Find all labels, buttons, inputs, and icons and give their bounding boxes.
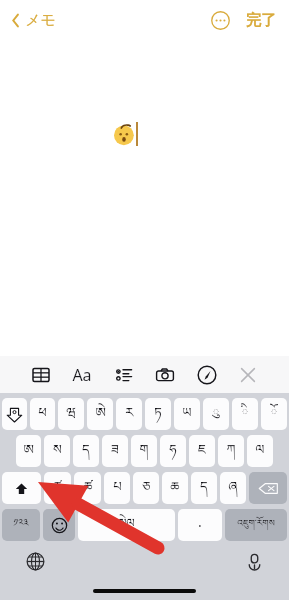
button[interactable]: ོ: [261, 398, 287, 430]
button[interactable]: ཨ: [16, 435, 41, 467]
button[interactable]: Dictate: [241, 548, 267, 574]
button[interactable]: ཞ: [220, 472, 246, 504]
button[interactable]: ཧ: [160, 435, 186, 467]
staticText: 完了: [246, 11, 276, 30]
staticText: ཅ: [142, 472, 151, 504]
staticText: ཟ: [111, 435, 119, 467]
staticText: ོ: [270, 398, 278, 430]
button[interactable]: Emoji: [43, 509, 75, 541]
staticText: ཨ: [23, 435, 34, 467]
button[interactable]: Shift: [2, 472, 41, 504]
staticText: འཇུག་རོགས: [237, 513, 275, 538]
button[interactable]: པ: [104, 472, 130, 504]
button[interactable]: Input options: [2, 398, 27, 430]
button[interactable]: ལ: [247, 435, 273, 467]
button[interactable]: Checklist: [109, 361, 139, 389]
staticText: ི: [241, 398, 249, 430]
button[interactable]: ཅ: [133, 472, 159, 504]
button[interactable]: ད: [191, 472, 217, 504]
button[interactable]: ཝ: [58, 398, 84, 430]
button[interactable]: འཇུག་རོགས: [225, 509, 287, 541]
button[interactable]: ག: [131, 435, 157, 467]
button[interactable]: Change keyboard: [22, 548, 48, 574]
button[interactable]: Backspace: [249, 472, 287, 504]
button[interactable]: ཙ: [44, 472, 71, 504]
staticText: ·: [198, 516, 202, 535]
staticText: ཝ: [66, 398, 76, 430]
button[interactable]: Table: [26, 361, 56, 389]
button[interactable]: ཟ: [102, 435, 128, 467]
staticText: ས: [53, 435, 62, 467]
staticText: ག: [139, 435, 149, 467]
staticText: ཀ: [226, 435, 236, 467]
staticText: ཕ: [38, 398, 47, 430]
button[interactable]: ཇ: [189, 435, 215, 467]
staticText: པ: [113, 472, 122, 504]
staticText: ཇ: [198, 435, 206, 467]
staticText: Aa: [72, 364, 92, 386]
button[interactable]: ·: [178, 509, 222, 541]
button[interactable]: སྤེལ: [78, 509, 175, 541]
button[interactable]: ཕ: [30, 398, 55, 430]
button[interactable]: ར: [116, 398, 142, 430]
button[interactable]: Close keyboard: [233, 361, 263, 389]
staticText: ཞ: [228, 472, 238, 504]
staticText: ཡ: [182, 398, 192, 430]
staticText: ར: [125, 398, 134, 430]
staticText: ཆ: [170, 472, 180, 504]
button[interactable]: ༡༢༣: [2, 509, 40, 541]
button[interactable]: Aa: [67, 361, 97, 389]
button[interactable]: Camera: [150, 361, 180, 389]
staticText: ཚ: [83, 472, 93, 504]
staticText: ཙ: [53, 472, 62, 504]
button[interactable]: ཏ: [145, 398, 171, 430]
staticText: ུ: [212, 398, 220, 430]
button[interactable]: ཡ: [174, 398, 200, 430]
staticText: ༡༢༣: [13, 511, 29, 539]
button[interactable]: 完了: [243, 8, 279, 33]
staticText: メモ: [25, 11, 56, 30]
button[interactable]: ཀ: [218, 435, 244, 467]
button[interactable]: More options: [207, 7, 233, 33]
button[interactable]: ཨེ: [87, 398, 113, 430]
button[interactable]: ས: [44, 435, 70, 467]
button[interactable]: ད: [73, 435, 99, 467]
staticText: ད: [82, 435, 90, 467]
button[interactable]: Markup: [192, 361, 222, 389]
staticText: ཨེ: [95, 398, 106, 430]
staticText: སྤེལ: [118, 509, 135, 541]
staticText: ཧ: [169, 435, 177, 467]
staticText: ཏ: [154, 398, 162, 430]
button[interactable]: ི: [232, 398, 258, 430]
button[interactable]: ུ: [203, 398, 229, 430]
button[interactable]: メモ: [6, 7, 60, 34]
staticText: ད: [200, 472, 208, 504]
button[interactable]: ཚ: [74, 472, 101, 504]
button[interactable]: ཆ: [162, 472, 188, 504]
staticText: ལ: [255, 435, 265, 467]
